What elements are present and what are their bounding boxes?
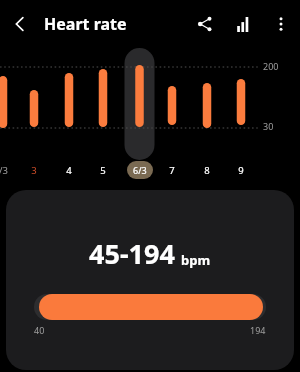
staticText: 3 (31, 164, 37, 177)
button[interactable]: 3 (22, 160, 46, 180)
button[interactable]: 5 (91, 160, 115, 180)
staticText: bpm (181, 251, 211, 269)
staticText: 5 (100, 164, 106, 177)
button[interactable]: 9 (229, 160, 253, 180)
staticText: 7 (169, 164, 175, 177)
button[interactable]: Share (186, 5, 224, 43)
staticText: /3 (0, 164, 8, 177)
staticText: 4 (66, 164, 72, 177)
button[interactable]: 8 (195, 160, 219, 180)
button[interactable]: 45-194 (6, 190, 294, 370)
button[interactable]: 7 (160, 160, 184, 180)
button[interactable]: Back (0, 4, 40, 44)
staticText: 9 (238, 164, 244, 177)
staticText: 200 (263, 60, 279, 72)
staticText: 45-194 (89, 235, 175, 272)
staticText: 30 (263, 120, 274, 132)
button[interactable]: 4 (57, 160, 81, 180)
staticText: 6/3 (133, 164, 147, 176)
staticText: 40 (34, 324, 45, 336)
staticText: 194 (250, 324, 266, 336)
button[interactable]: /3 (0, 160, 15, 180)
button[interactable]: 6/3 (127, 161, 153, 179)
button[interactable]: Chart (224, 5, 262, 43)
staticText: 8 (204, 164, 210, 177)
button[interactable]: More options (262, 5, 300, 43)
staticText: Heart rate (44, 13, 127, 35)
